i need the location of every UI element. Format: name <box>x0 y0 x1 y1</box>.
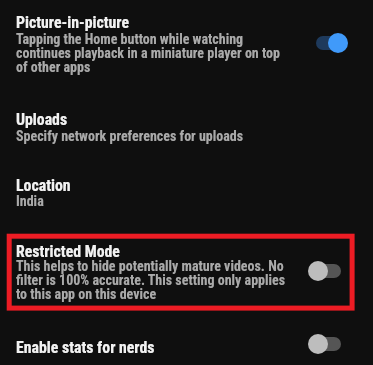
button[interactable]: Enable stats for nerds <box>0 330 373 364</box>
staticText: Location <box>16 176 71 195</box>
staticText: India <box>16 193 44 209</box>
button[interactable]: Location <box>0 168 373 214</box>
staticText: Picture-in-picture <box>16 13 129 32</box>
button[interactable]: Uploads <box>0 102 373 148</box>
button[interactable]: Restricted Mode <box>0 234 373 312</box>
staticText: Tapping the Home button while watching c… <box>16 31 280 76</box>
staticText: This helps to hide potentially mature vi… <box>16 258 286 303</box>
button[interactable]: Restricted Mode, off <box>304 253 354 289</box>
staticText: Restricted Mode <box>16 242 120 261</box>
staticText: Specify network preferences for uploads <box>16 128 244 144</box>
button[interactable]: Picture-in-picture, on <box>304 25 354 61</box>
button[interactable]: Picture-in-picture <box>0 4 373 86</box>
staticText: Uploads <box>16 110 68 129</box>
button[interactable]: Enable stats for nerds, off <box>304 326 354 362</box>
staticText: Enable stats for nerds <box>16 338 155 357</box>
